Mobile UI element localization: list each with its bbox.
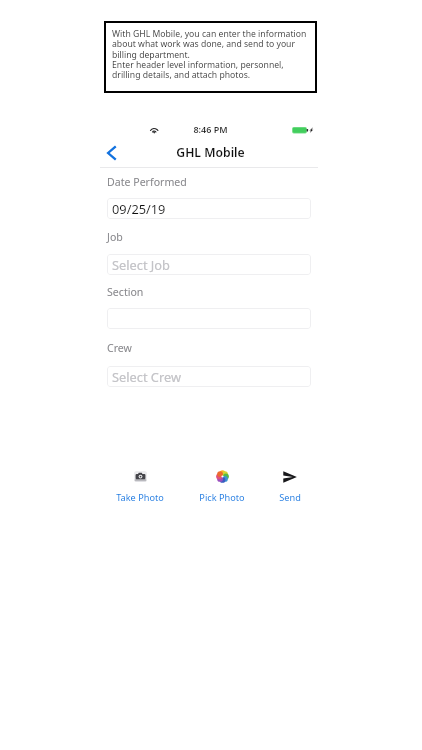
- staticText: Select Crew: [112, 368, 181, 385]
- button[interactable]: Select Crew: [107, 366, 311, 387]
- staticText: Take Photo: [116, 491, 164, 503]
- staticText: With GHL Mobile, you can enter the infor…: [112, 28, 307, 40]
- staticText: Enter header level information, personne…: [112, 59, 284, 71]
- button[interactable]: Send: [258, 470, 322, 503]
- staticText: Job: [107, 230, 123, 244]
- button[interactable]: Select Job: [107, 254, 311, 275]
- button[interactable]: Take Photo: [108, 470, 172, 503]
- staticText: Select Job: [112, 256, 170, 273]
- button[interactable]: 09/25/19: [107, 198, 311, 219]
- button[interactable]: [107, 308, 311, 329]
- staticText: 8:46 PM: [193, 123, 228, 135]
- staticText: billing department.: [112, 49, 190, 61]
- staticText: Send: [279, 491, 301, 503]
- staticText: drilling details, and attach photos.: [112, 69, 251, 81]
- button[interactable]: Back: [100, 141, 122, 164]
- button[interactable]: Pick Photo: [190, 470, 254, 503]
- staticText: 09/25/19: [112, 200, 166, 217]
- staticText: Date Performed: [107, 175, 187, 189]
- staticText: Crew: [107, 341, 132, 355]
- staticText: Pick Photo: [199, 491, 245, 503]
- staticText: Section: [107, 285, 144, 299]
- staticText: GHL Mobile: [176, 144, 245, 161]
- staticText: about what work was done, and send to yo…: [112, 38, 296, 50]
